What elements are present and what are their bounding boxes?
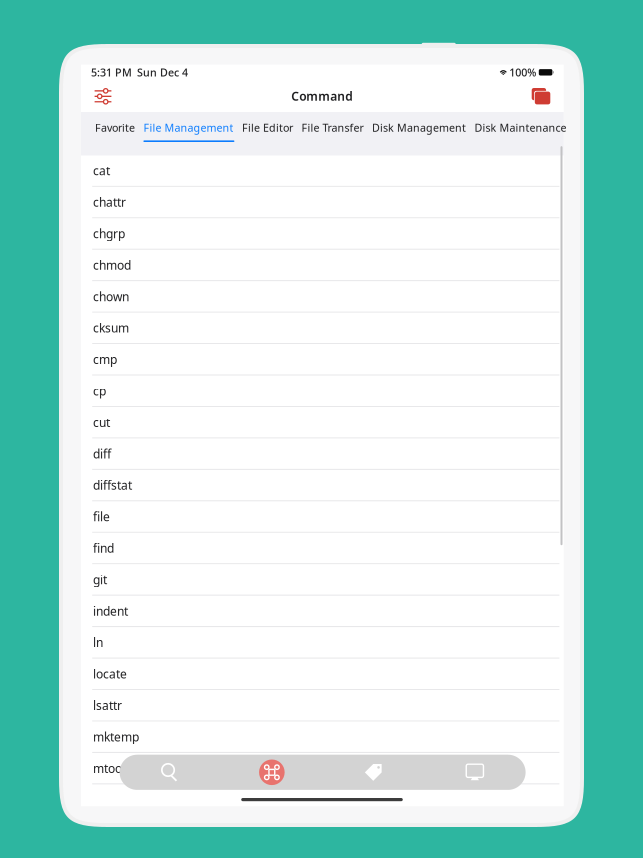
button[interactable]: diffstat (81, 470, 564, 501)
staticText: find (93, 540, 114, 556)
staticText: file (93, 509, 110, 525)
button[interactable]: Remote desktop (424, 755, 526, 790)
staticText: mktemp (93, 729, 139, 745)
staticText: Favorite (95, 120, 135, 135)
staticText: lsattr (93, 697, 122, 713)
button[interactable]: File Management (143, 112, 234, 155)
staticText: locate (93, 666, 127, 682)
staticText: Disk Management (372, 120, 466, 135)
staticText: chattr (93, 194, 126, 210)
button[interactable]: cat (81, 155, 564, 187)
button[interactable]: Disk Maintenance (474, 112, 567, 155)
staticText: 5:31 PM (91, 65, 132, 79)
button[interactable]: File Transfer (301, 112, 364, 155)
button[interactable]: diff (81, 438, 564, 470)
button[interactable]: chown (81, 281, 564, 313)
staticText: File Transfer (301, 120, 363, 135)
staticText: diffstat (93, 477, 132, 493)
button[interactable]: locate (81, 659, 564, 690)
button[interactable]: cmp (81, 344, 564, 376)
staticText: Sun Dec 4 (137, 65, 188, 79)
button[interactable]: cp (81, 376, 564, 407)
button[interactable]: indent (81, 596, 564, 627)
button[interactable]: find (81, 533, 564, 564)
button[interactable]: Search (120, 755, 221, 790)
button[interactable]: chattr (81, 187, 564, 218)
staticText: cut (93, 414, 110, 430)
button[interactable]: File Editor (242, 112, 294, 155)
staticText: git (93, 572, 107, 587)
button[interactable]: cut (81, 407, 564, 438)
staticText: mtool (93, 760, 125, 776)
staticText: cat (93, 163, 110, 179)
button[interactable]: Disk Management (372, 112, 467, 155)
button[interactable]: git (81, 564, 564, 596)
button[interactable]: New window (527, 83, 555, 109)
button[interactable]: file (81, 501, 564, 533)
staticText: Disk Maintenance (474, 120, 566, 135)
button[interactable]: Commands (221, 755, 323, 790)
staticText: File Management (143, 120, 233, 135)
staticText: 100% (509, 65, 536, 79)
button[interactable]: Tags (323, 755, 424, 790)
button[interactable]: chmod (81, 250, 564, 281)
staticText: Command (291, 88, 353, 104)
button[interactable]: mktemp (81, 722, 564, 753)
button[interactable]: mtool (81, 753, 564, 784)
button[interactable]: cksum (81, 313, 564, 344)
staticText: ln (93, 634, 103, 650)
staticText: chown (93, 288, 129, 304)
staticText: chgrp (93, 226, 125, 241)
button[interactable]: chgrp (81, 218, 564, 250)
staticText: cksum (93, 320, 129, 336)
staticText: File Editor (242, 120, 293, 135)
staticText: indent (93, 603, 128, 619)
button[interactable]: ln (81, 627, 564, 659)
staticText: cp (93, 383, 106, 399)
button[interactable]: lsattr (81, 690, 564, 721)
button[interactable]: Favorite (95, 112, 136, 155)
staticText: cmp (93, 351, 117, 367)
staticText: diff (93, 446, 111, 462)
button[interactable]: Filter settings (89, 84, 117, 110)
staticText: chmod (93, 257, 131, 273)
